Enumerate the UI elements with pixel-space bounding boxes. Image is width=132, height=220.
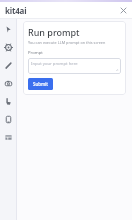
button[interactable]: Device bbox=[2, 113, 15, 126]
button[interactable]: Submit bbox=[28, 78, 53, 90]
staticText: Input your prompt here bbox=[31, 61, 78, 67]
button[interactable]: kit4ai home bbox=[3, 4, 29, 17]
button[interactable]: Camera bbox=[2, 77, 15, 90]
button[interactable]: Input your prompt here bbox=[28, 58, 121, 74]
button[interactable]: Touch bbox=[2, 95, 15, 108]
staticText: Submit bbox=[33, 81, 48, 87]
staticText: You can execute LLM prompt on this scree… bbox=[28, 40, 106, 45]
staticText: kit4ai bbox=[5, 5, 27, 16]
button[interactable]: Layers bbox=[2, 131, 15, 144]
button[interactable]: Edit bbox=[2, 59, 15, 72]
button[interactable]: Close bbox=[119, 6, 128, 15]
button[interactable]: Cursor bbox=[2, 23, 15, 36]
staticText: Run prompt bbox=[28, 26, 80, 38]
button[interactable]: Settings bbox=[2, 41, 15, 54]
staticText: Prompt bbox=[28, 50, 43, 56]
